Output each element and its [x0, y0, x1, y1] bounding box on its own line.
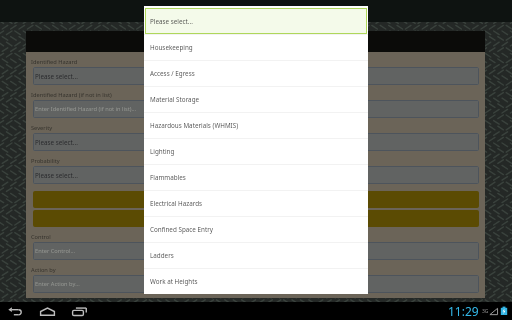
staticText: Ladders — [150, 251, 174, 260]
staticText: Identified Hazard (if not in list) — [31, 91, 112, 99]
button[interactable]: Enter Action by... — [33, 275, 479, 293]
staticText: Please select... — [35, 138, 78, 147]
button[interactable]: Enter Control... — [33, 242, 479, 260]
button[interactable]: Material Storage — [144, 87, 368, 112]
staticText: Please select... — [35, 72, 78, 81]
button[interactable]: Enter Identified Hazard (if not in list)… — [33, 100, 479, 118]
staticText: Control — [31, 233, 51, 241]
button[interactable]: Please select... — [33, 67, 479, 85]
staticText: Probability — [31, 157, 60, 165]
staticText: 3G — [482, 308, 489, 315]
staticText: Enter Identified Hazard (if not in list)… — [35, 105, 137, 113]
button[interactable]: Recent apps — [69, 302, 90, 320]
button[interactable]: Please select... — [33, 166, 479, 184]
button[interactable]: Back — [5, 302, 26, 320]
button[interactable]: Confined Space Entry — [144, 217, 368, 242]
staticText: Action by — [31, 266, 56, 274]
button[interactable] — [33, 191, 479, 208]
button[interactable]: Home — [37, 302, 58, 320]
staticText: Flammables — [150, 173, 186, 182]
button[interactable]: Flammables — [144, 165, 368, 190]
staticText: Confined Space Entry — [150, 225, 213, 234]
staticText: Identified Hazard — [31, 58, 78, 66]
button[interactable]: Work at Heights — [144, 269, 368, 294]
staticText: Enter Action by... — [35, 280, 80, 288]
button[interactable] — [33, 210, 479, 227]
staticText: Housekeeping — [150, 43, 193, 52]
button[interactable]: Hazardous Materials (WHMIS) — [144, 113, 368, 138]
button[interactable]: Ladders — [144, 243, 368, 268]
button[interactable]: Please select... — [145, 8, 367, 34]
staticText: Access / Egress — [150, 69, 195, 78]
staticText: Electrical Hazards — [150, 199, 203, 208]
staticText: Hazardous Materials (WHMIS) — [150, 121, 239, 130]
button[interactable]: Please select... — [33, 133, 479, 151]
staticText: Lighting — [150, 147, 175, 156]
staticText: Enter Control... — [35, 247, 76, 255]
button[interactable]: Access / Egress — [144, 61, 368, 86]
staticText: Please select... — [150, 17, 193, 26]
button[interactable]: Electrical Hazards — [144, 191, 368, 216]
button[interactable]: Lighting — [144, 139, 368, 164]
staticText: Work at Heights — [150, 277, 198, 286]
staticText: 11:29 — [448, 303, 479, 319]
staticText: Severity — [31, 124, 53, 132]
staticText: Please select... — [35, 171, 78, 180]
button[interactable]: Housekeeping — [144, 35, 368, 60]
staticText: Material Storage — [150, 95, 200, 104]
